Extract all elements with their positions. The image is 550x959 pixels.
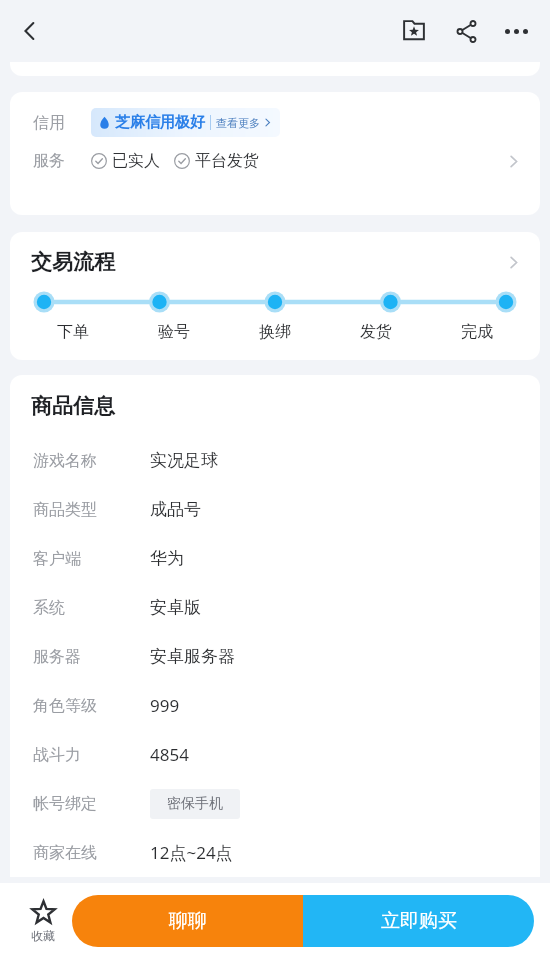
- staticText: 商品信息: [31, 393, 115, 419]
- staticText: 交易流程: [31, 249, 115, 275]
- staticText: 完成: [461, 322, 493, 342]
- staticText: 立即购买: [381, 909, 457, 933]
- staticText: 商家在线: [33, 843, 97, 863]
- staticText: 战斗力: [33, 745, 81, 765]
- staticText: 芝麻信用极好: [115, 113, 205, 132]
- staticText: 验号: [158, 322, 190, 342]
- staticText: 聊聊: [169, 909, 207, 933]
- staticText: 平台发货: [195, 151, 259, 171]
- button[interactable]: 芝麻信用极好: [98, 108, 273, 137]
- staticText: 系统: [33, 598, 65, 618]
- staticText: 角色等级: [33, 696, 97, 716]
- staticText: 成品号: [150, 499, 201, 520]
- staticText: 安卓版: [150, 597, 201, 618]
- staticText: 999: [150, 694, 180, 717]
- staticText: 收藏: [31, 928, 55, 943]
- button[interactable]: 交易流程: [10, 232, 540, 360]
- staticText: 服务: [33, 151, 65, 171]
- staticText: 已实人: [112, 151, 160, 171]
- staticText: 华为: [150, 548, 184, 569]
- button[interactable]: 收藏: [14, 883, 72, 959]
- staticText: 12点~24点: [150, 841, 233, 864]
- button[interactable]: 立即购买: [303, 895, 534, 947]
- button[interactable]: Share: [444, 9, 488, 53]
- button[interactable]: More options: [494, 9, 538, 53]
- button[interactable]: 聊聊: [72, 895, 303, 947]
- staticText: 下单: [57, 322, 89, 342]
- button[interactable]: Collections: [392, 9, 436, 53]
- staticText: 信用: [33, 113, 65, 133]
- button[interactable]: Back: [8, 9, 52, 53]
- staticText: 密保手机: [167, 795, 223, 813]
- staticText: 客户端: [33, 549, 81, 569]
- button[interactable]: 信用: [10, 92, 540, 215]
- staticText: 发货: [360, 322, 392, 342]
- staticText: 游戏名称: [33, 451, 97, 471]
- staticText: 服务器: [33, 647, 81, 667]
- staticText: 帐号绑定: [33, 794, 97, 814]
- staticText: 实况足球: [150, 450, 218, 471]
- staticText: 换绑: [259, 322, 291, 342]
- staticText: 商品类型: [33, 500, 97, 520]
- staticText: 安卓服务器: [150, 646, 235, 667]
- staticText: 查看更多: [216, 116, 260, 130]
- staticText: 4854: [150, 743, 189, 766]
